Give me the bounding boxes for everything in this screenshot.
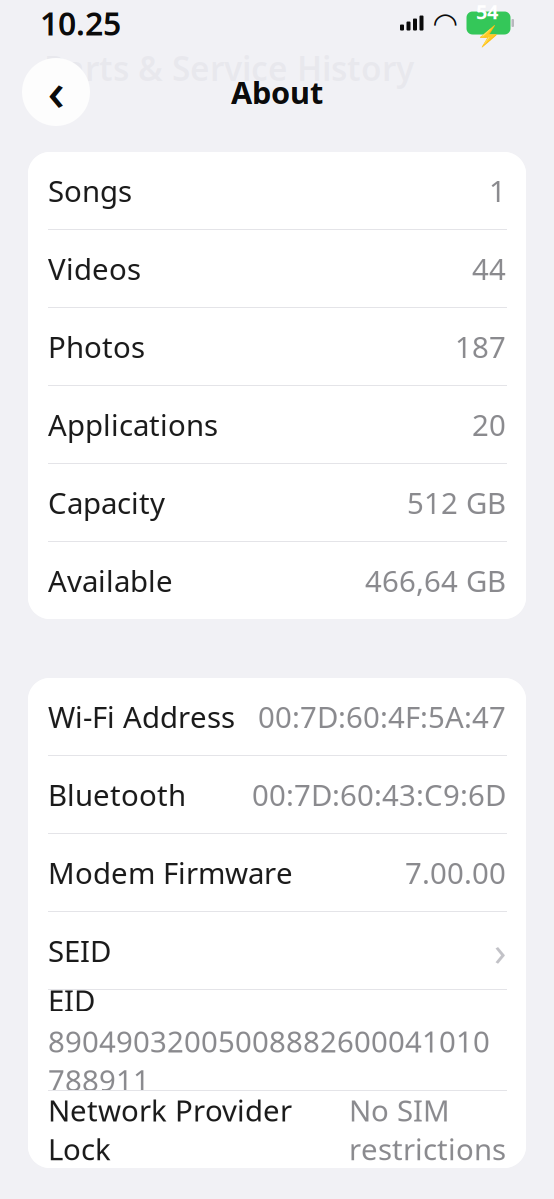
staticText: SEID (48, 931, 111, 970)
button[interactable]: Videos (28, 230, 526, 307)
button[interactable]: Songs (28, 152, 526, 229)
staticText: 466,64 GB (365, 561, 506, 600)
staticText: 1 (489, 171, 506, 210)
button[interactable]: Wi-Fi Address (28, 678, 526, 755)
staticText: Photos (48, 327, 145, 366)
staticText: Capacity (48, 483, 165, 522)
button[interactable]: Applications (28, 386, 526, 463)
staticText: ‹ (47, 55, 64, 125)
staticText: Modem Firmware (48, 853, 293, 892)
staticText: 10.25 (40, 2, 121, 44)
staticText: Network Provider Lock (48, 1090, 292, 1168)
staticText: EID (48, 981, 95, 1020)
staticText: › (494, 924, 506, 977)
staticText: 00:7D:60:4F:5A:47 (258, 697, 506, 736)
button[interactable]: Back (22, 58, 90, 126)
staticText: ◠ (434, 6, 457, 40)
button[interactable]: SEID (28, 912, 526, 989)
staticText: Applications (48, 405, 218, 444)
staticText: Wi-Fi Address (48, 697, 235, 736)
staticText: 54⚡ (476, 0, 501, 48)
staticText: 44 (472, 249, 506, 288)
button[interactable]: Modem Firmware (28, 834, 526, 911)
staticText: 512 GB (407, 483, 506, 522)
staticText: About (231, 72, 323, 112)
staticText: 00:7D:60:43:C9:6D (252, 775, 506, 814)
button[interactable]: Available (28, 542, 526, 619)
button[interactable]: Network Provider Lock (28, 1091, 526, 1168)
staticText: Songs (48, 171, 132, 210)
staticText: Available (48, 561, 173, 600)
button[interactable]: Bluetooth (28, 756, 526, 833)
staticText: Videos (48, 249, 141, 288)
staticText: 89049032005008882600041010788911 (48, 1021, 490, 1099)
staticText: 7.00.00 (405, 853, 506, 892)
staticText: Bluetooth (48, 775, 186, 814)
button[interactable]: Photos (28, 308, 526, 385)
staticText: No SIM restrictions (349, 1090, 506, 1168)
button[interactable]: Capacity (28, 464, 526, 541)
staticText: 20 (472, 405, 506, 444)
staticText: 187 (455, 327, 506, 366)
staticText: Parts & Service History (44, 46, 414, 90)
button[interactable]: EID (28, 990, 526, 1090)
